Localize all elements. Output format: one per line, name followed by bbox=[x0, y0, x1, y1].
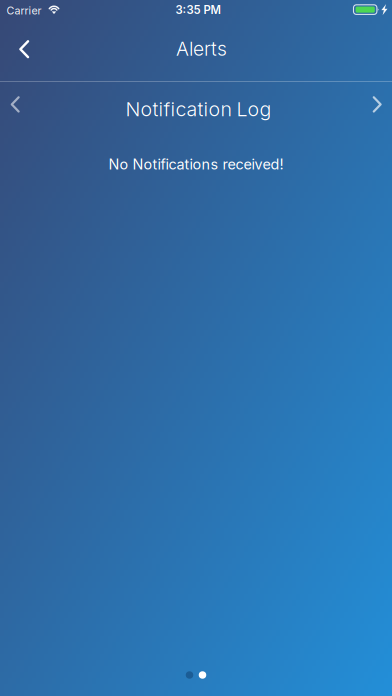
staticText: 3:35 PM bbox=[175, 3, 220, 17]
button[interactable]: Page 1 bbox=[186, 671, 193, 679]
staticText: No Notifications received! bbox=[109, 155, 284, 173]
button[interactable]: Page 2, current page bbox=[199, 671, 206, 679]
button[interactable]: Next page bbox=[355, 83, 392, 125]
button[interactable]: Previous page bbox=[0, 83, 37, 125]
button[interactable]: Notification Log bbox=[98, 88, 298, 130]
button[interactable]: Back bbox=[2, 27, 46, 71]
staticText: Notification Log bbox=[125, 97, 271, 121]
staticText: Alerts bbox=[176, 37, 227, 60]
staticText: Carrier bbox=[7, 4, 42, 17]
